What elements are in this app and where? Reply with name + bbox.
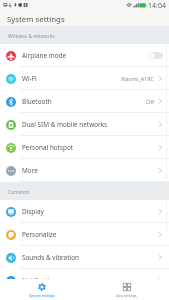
button[interactable]: More — [0, 159, 169, 182]
button[interactable]: Notifications — [0, 269, 169, 292]
staticText: Xiaomi_A19C — [121, 75, 154, 82]
staticText: Notifications — [22, 276, 61, 285]
staticText: Bluetooth — [22, 97, 52, 106]
staticText: Wi-Fi — [22, 74, 37, 83]
staticText: App settings — [116, 293, 137, 298]
button[interactable]: Display — [0, 200, 169, 223]
staticText: Common — [8, 189, 30, 196]
staticText: Dual SIM & mobile networks — [22, 120, 108, 129]
button[interactable]: Sounds & vibration — [0, 246, 169, 269]
button[interactable]: Dual SIM & mobile networks — [0, 113, 169, 136]
staticText: System settings — [7, 14, 65, 25]
button[interactable]: System settings — [0, 279, 84, 300]
staticText: Sounds & vibration — [22, 253, 79, 262]
button[interactable]: Wi-Fi — [0, 67, 169, 90]
staticText: More — [22, 166, 38, 175]
staticText: Display — [22, 207, 44, 216]
button[interactable]: Airplane mode — [0, 44, 169, 67]
staticText: Wireless & networks — [8, 33, 55, 40]
staticText: System settings — [29, 293, 55, 298]
button[interactable]: Personalize — [0, 223, 169, 246]
staticText: Personalize — [22, 230, 57, 239]
staticText: 14:04 — [148, 1, 166, 11]
staticText: Personal hotspot — [22, 143, 74, 152]
staticText: Off — [146, 98, 154, 105]
button[interactable]: Bluetooth — [0, 90, 169, 113]
button[interactable]: App settings — [84, 279, 169, 300]
staticText: Airplane mode — [22, 51, 67, 60]
button[interactable]: Personal hotspot — [0, 136, 169, 159]
